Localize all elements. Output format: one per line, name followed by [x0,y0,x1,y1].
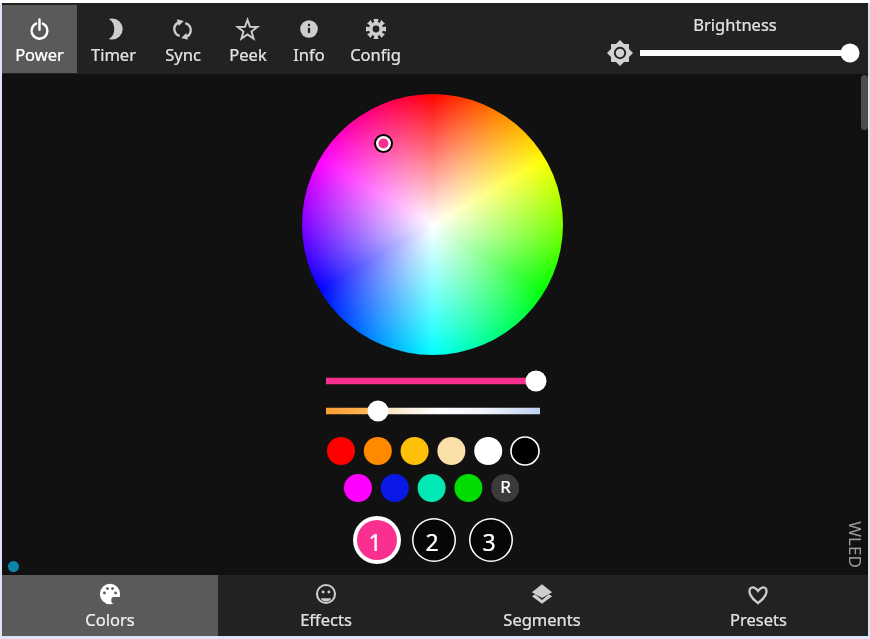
staticText: Segments [503,608,581,630]
button[interactable]: Effects [218,575,434,636]
staticText: Peek [229,43,267,65]
button[interactable]: Sync [149,5,216,73]
staticText: Info [293,43,325,65]
staticText: Brightness [693,13,777,35]
staticText: WLED [844,521,867,568]
button[interactable]: White balance slider [319,399,547,423]
button[interactable]: Segments [434,575,650,636]
button[interactable]: Peek [216,5,279,73]
staticText: Presets [730,608,787,630]
button[interactable]: Quick colour palette [316,430,546,510]
button[interactable]: Power [2,5,77,73]
staticText: Power [15,43,64,65]
staticText: R [500,475,511,498]
button[interactable]: Timer [77,5,149,73]
staticText: Colors [85,608,135,630]
button[interactable]: Info [279,5,338,73]
button[interactable]: Color slider [319,369,547,393]
staticText: Config [350,43,401,65]
staticText: Sync [165,43,201,65]
button[interactable]: Color wheel [302,94,563,355]
button[interactable]: Presets [650,575,866,636]
button[interactable]: Config [338,5,413,73]
button[interactable]: Colors [2,575,218,636]
staticText: 3 [482,526,496,557]
staticText: Timer [91,43,136,65]
staticText: 1 [368,526,382,557]
button[interactable]: Brightness slider [637,42,859,64]
staticText: Effects [300,608,352,630]
staticText: 2 [425,526,439,557]
button[interactable]: Presets [348,509,523,569]
